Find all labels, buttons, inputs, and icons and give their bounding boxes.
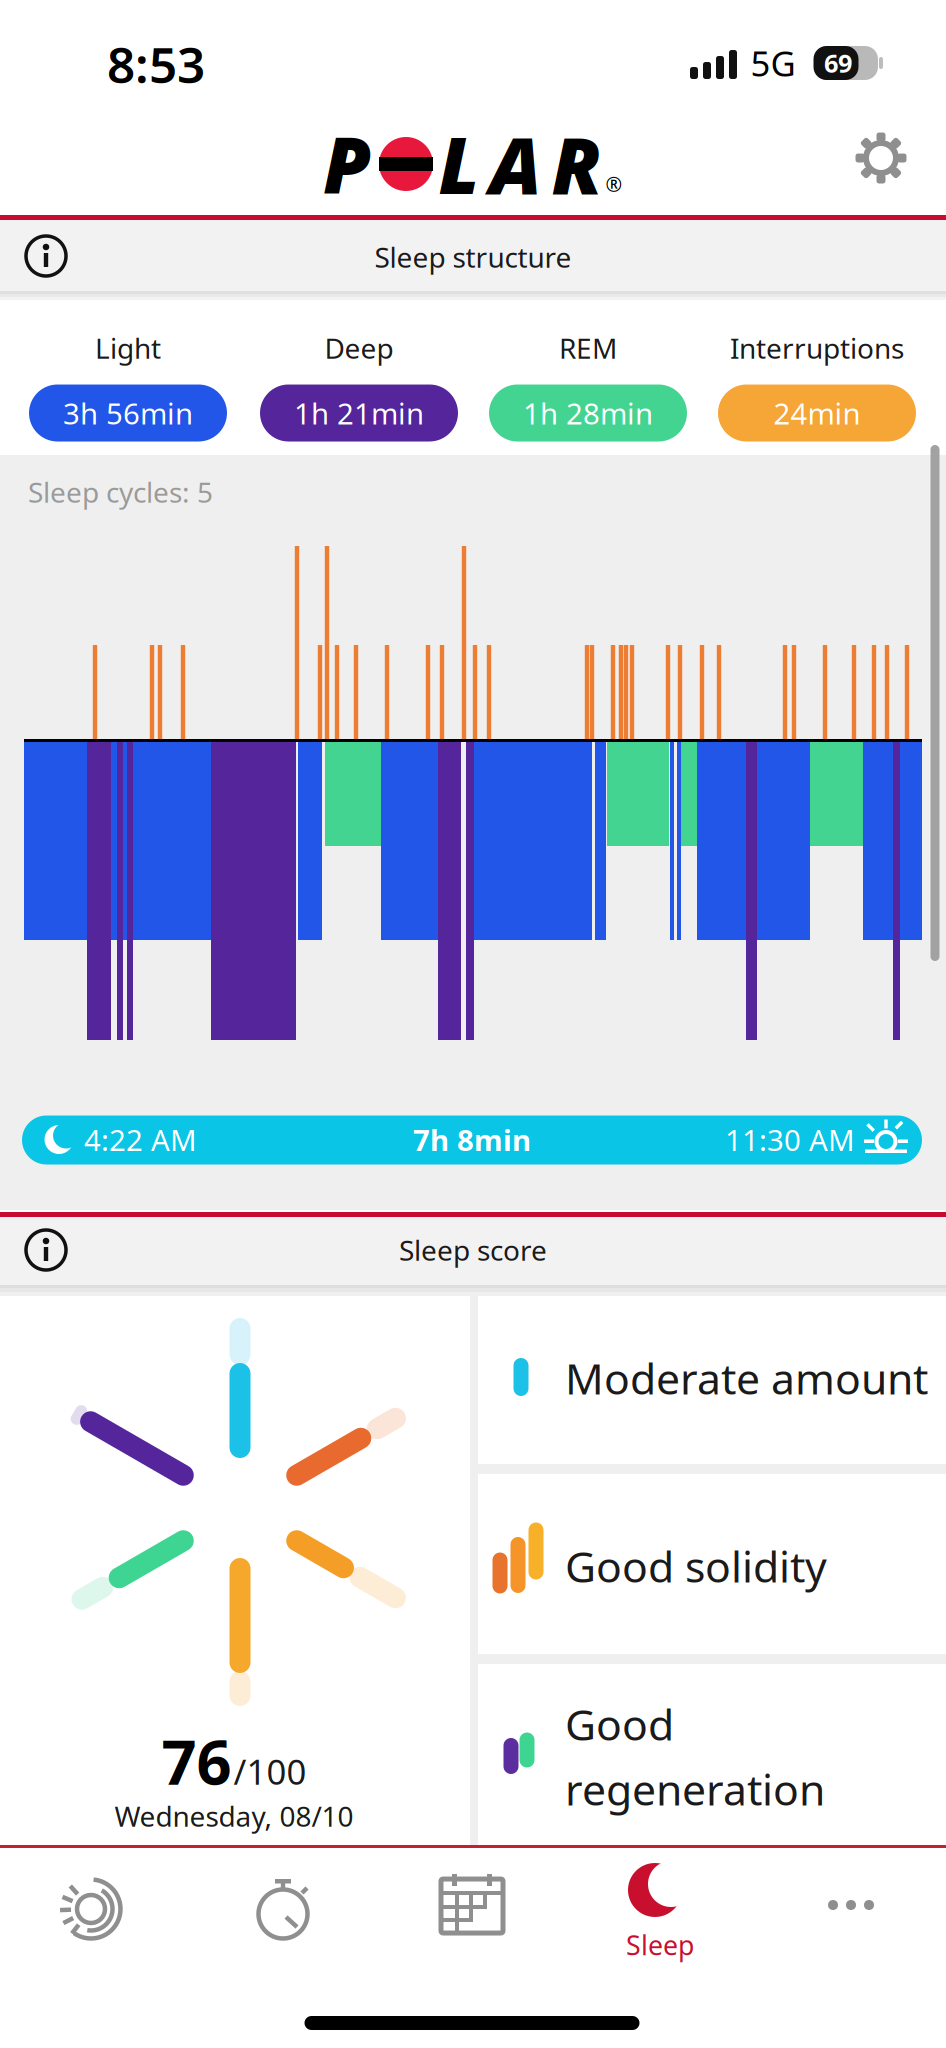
staticText: Light [95, 329, 161, 367]
staticText: 76 [161, 1720, 231, 1802]
button[interactable]: Good [478, 1664, 946, 1845]
button[interactable]: 3h 56min [29, 384, 227, 441]
staticText: 3h 56min [63, 393, 193, 432]
button[interactable] [22, 232, 70, 280]
button[interactable]: Good solidity [478, 1474, 946, 1654]
button[interactable] [4, 1843, 184, 1973]
button[interactable]: Sleep [570, 1848, 750, 1978]
staticText: Good [565, 1696, 674, 1752]
staticText: 5G [750, 40, 795, 86]
button[interactable]: 24min [718, 384, 916, 441]
staticText: 4:22 AM [84, 1120, 197, 1159]
staticText: R [551, 113, 601, 215]
staticText: P [323, 113, 371, 215]
staticText: L [438, 113, 479, 215]
staticText: 8:53 [107, 31, 205, 97]
staticText: REM [559, 329, 617, 367]
button[interactable] [761, 1840, 941, 1970]
button[interactable]: 4:22 AM [22, 1115, 922, 1164]
staticText: Sleep structure [374, 238, 571, 276]
staticText: Sleep [626, 1927, 694, 1963]
staticText: regeneration [565, 1761, 825, 1817]
staticText: 1h 28min [523, 393, 653, 432]
staticText: 7h 8min [413, 1120, 531, 1159]
staticText: Sleep score [399, 1231, 547, 1269]
button[interactable]: 1h 28min [489, 384, 687, 441]
staticText: 69 [824, 46, 852, 80]
staticText: A [489, 113, 541, 215]
staticText: Deep [324, 329, 393, 367]
staticText: Wednesday, 08/10 [114, 1797, 353, 1835]
button[interactable]: 1h 21min [260, 384, 458, 441]
staticText: 24min [773, 393, 860, 432]
button[interactable] [382, 1841, 562, 1971]
button[interactable] [193, 1843, 373, 1973]
staticText: /100 [233, 1748, 306, 1794]
staticText: Interruptions [730, 329, 904, 367]
button[interactable]: Moderate amount [478, 1290, 946, 1464]
staticText: Good solidity [565, 1538, 827, 1594]
button[interactable] [846, 123, 916, 193]
staticText: Sleep cycles: 5 [28, 473, 213, 511]
staticText: 1h 21min [294, 393, 424, 432]
staticText: Moderate amount [565, 1350, 928, 1406]
button[interactable] [22, 1226, 70, 1274]
staticText: 11:30 AM [725, 1120, 855, 1159]
staticText: ® [605, 171, 622, 197]
